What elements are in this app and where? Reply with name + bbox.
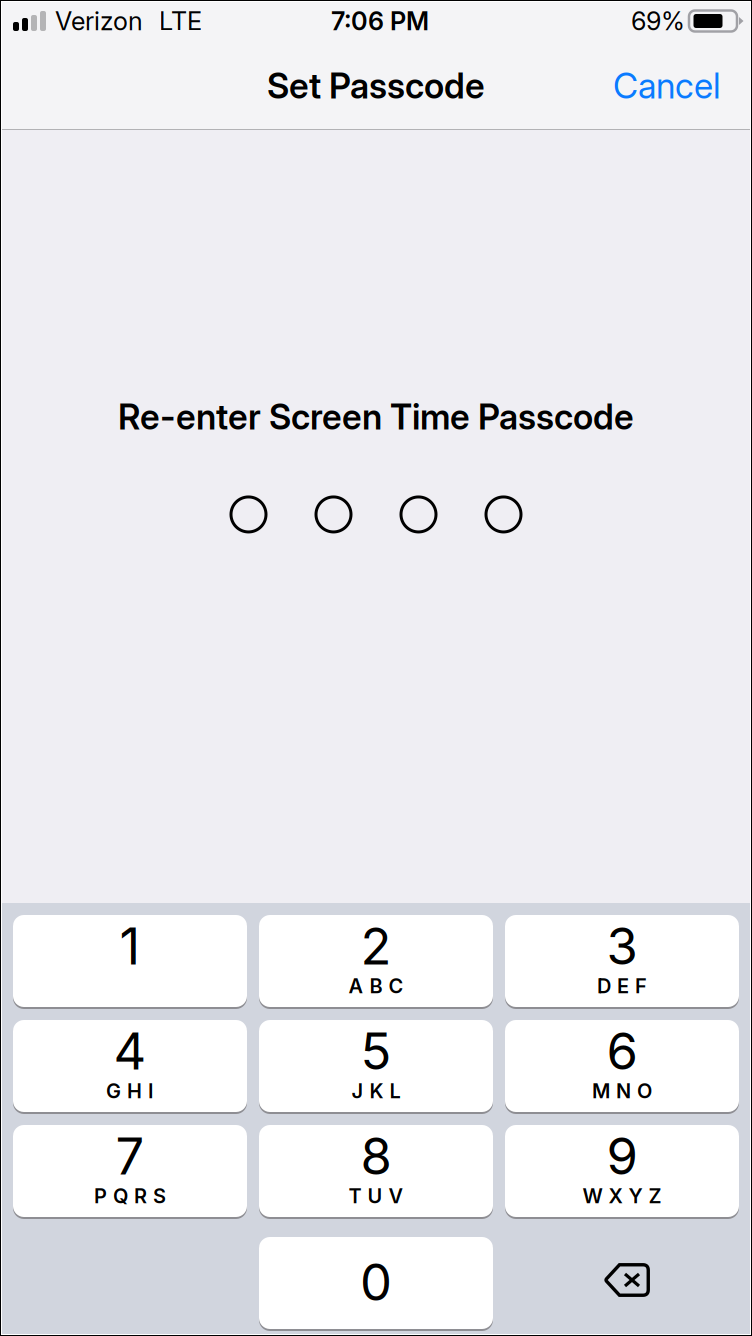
button[interactable]: 2: [259, 915, 493, 1007]
staticText: 3: [606, 915, 637, 977]
button[interactable]: 8: [259, 1125, 493, 1217]
button[interactable]: 3: [505, 915, 739, 1007]
staticText: 7:06 PM: [331, 6, 429, 36]
staticText: 5: [360, 1020, 391, 1082]
button[interactable]: Cancel: [597, 55, 737, 117]
staticText: D E F: [597, 974, 647, 998]
staticText: J K L: [351, 1079, 400, 1103]
staticText: 9: [606, 1125, 637, 1187]
staticText: 6: [606, 1020, 637, 1082]
button[interactable]: Delete: [505, 1237, 739, 1329]
staticText: 4: [113, 1020, 146, 1082]
staticText: LTE: [159, 6, 202, 36]
staticText: Set Passcode: [267, 65, 485, 107]
staticText: P Q R S: [94, 1184, 166, 1208]
staticText: Verizon: [55, 6, 143, 36]
staticText: 69%: [631, 6, 685, 36]
staticText: 0: [360, 1251, 392, 1313]
staticText: 8: [360, 1125, 391, 1187]
button[interactable]: 4: [13, 1020, 247, 1112]
staticText: 7: [115, 1125, 144, 1187]
staticText: 2: [360, 915, 391, 977]
button[interactable]: 6: [505, 1020, 739, 1112]
staticText: M N O: [592, 1079, 652, 1103]
button[interactable]: 7: [13, 1125, 247, 1217]
staticText: A B C: [348, 974, 403, 998]
staticText: G H I: [106, 1079, 154, 1103]
button[interactable]: 5: [259, 1020, 493, 1112]
staticText: 1: [119, 915, 140, 977]
staticText: W X Y Z: [582, 1184, 661, 1208]
button[interactable]: 9: [505, 1125, 739, 1217]
staticText: T U V: [348, 1184, 403, 1208]
button[interactable]: 0: [259, 1237, 493, 1329]
staticText: Cancel: [613, 65, 721, 107]
button[interactable]: 1: [13, 915, 247, 1007]
staticText: Re-enter Screen Time Passcode: [118, 396, 634, 438]
